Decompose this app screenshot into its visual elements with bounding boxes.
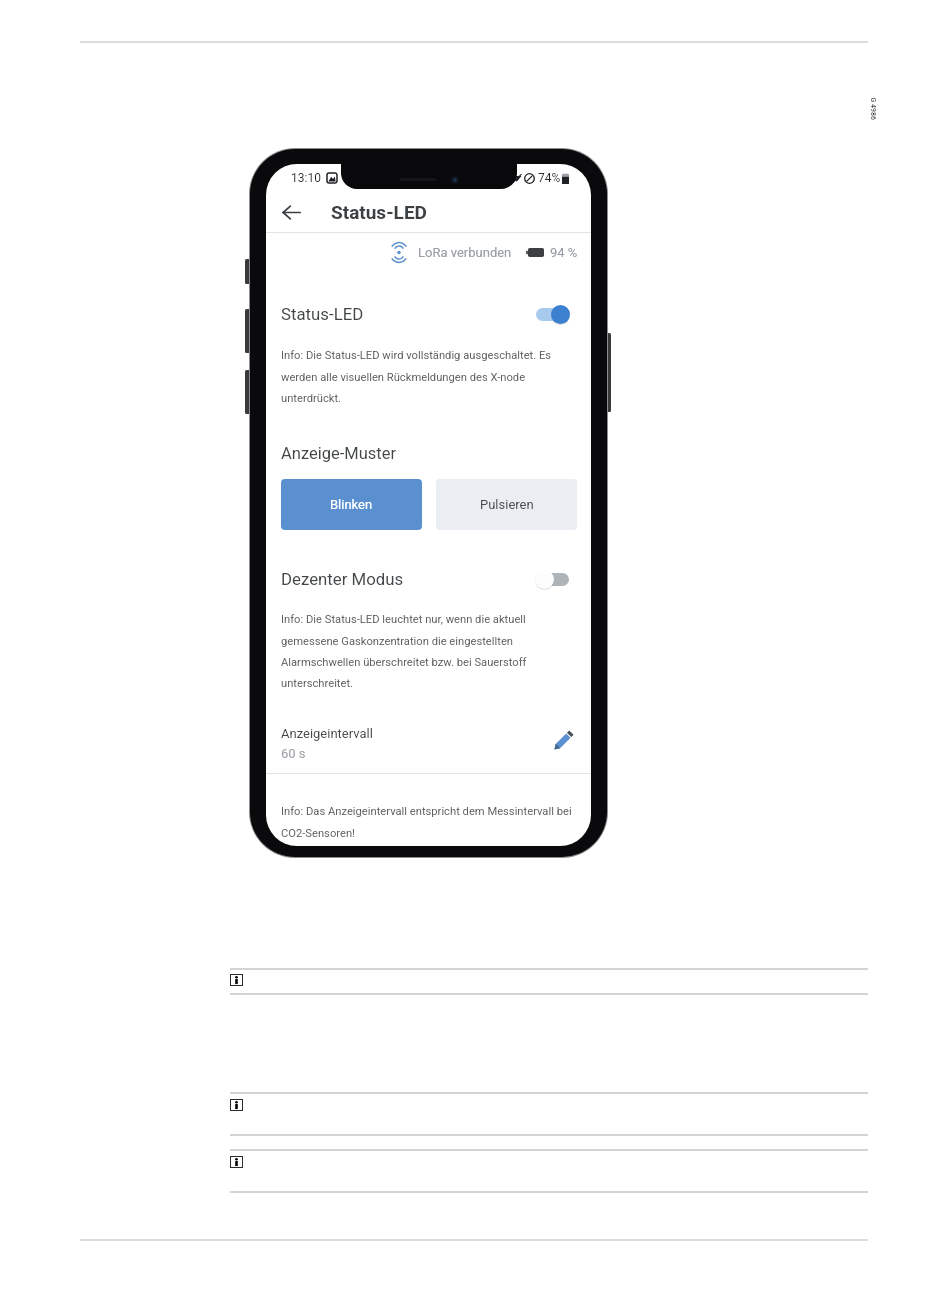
staticText: Info: Das Anzeigeintervall entspricht de… — [281, 805, 577, 840]
staticText: Anzeige-Muster — [281, 444, 397, 463]
staticText: Status-LED — [331, 201, 427, 223]
staticText: Info: Die Status-LED leuchtet nur, wenn … — [281, 613, 543, 690]
button[interactable]: Bearbeiten — [550, 727, 576, 753]
staticText: 13:10 — [291, 171, 321, 185]
staticText: Anzeigeintervall — [281, 726, 373, 741]
button[interactable]: Dezenter Modus — [281, 564, 569, 594]
staticText: 60 s — [281, 746, 306, 761]
staticText: Pulsieren — [480, 497, 534, 512]
staticText: G 4986 — [868, 97, 876, 120]
staticText: 94 % — [550, 245, 578, 260]
button[interactable]: Anzeigeintervall — [281, 719, 576, 767]
staticText: Status-LED — [281, 304, 364, 324]
button[interactable]: Status-LED — [281, 299, 569, 329]
staticText: Info: Die Status-LED wird vollständig au… — [281, 349, 553, 405]
button[interactable]: Blinken — [281, 479, 422, 530]
staticText: LoRa verbunden — [418, 245, 512, 260]
button[interactable]: Pulsieren — [436, 479, 577, 530]
button[interactable]: Zurück — [272, 193, 310, 231]
staticText: Blinken — [330, 497, 373, 512]
staticText: 74% — [538, 171, 561, 185]
staticText: Dezenter Modus — [281, 569, 404, 589]
